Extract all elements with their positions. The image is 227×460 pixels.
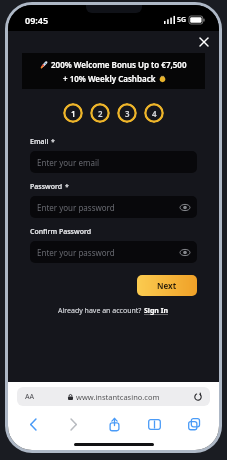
- button[interactable]: Forward: [62, 413, 84, 435]
- button[interactable]: Share: [103, 413, 125, 435]
- staticText: 3: [125, 108, 130, 119]
- staticText: Sign In: [144, 306, 169, 316]
- staticText: 4: [152, 108, 157, 119]
- staticText: 5G: [177, 15, 187, 25]
- staticText: + 10% Weekly Cashback: [63, 73, 156, 84]
- staticText: AA: [25, 392, 35, 402]
- staticText: Enter your password: [37, 247, 115, 258]
- button[interactable]: Enter your password: [30, 241, 197, 263]
- staticText: Confirm Password: [30, 227, 92, 237]
- button[interactable]: 1: [63, 103, 83, 123]
- staticText: Email: [30, 137, 49, 147]
- button[interactable]: Reload: [192, 391, 203, 402]
- staticText: Enter your email: [37, 157, 100, 168]
- button[interactable]: AA: [17, 387, 210, 406]
- button[interactable]: Close: [195, 33, 213, 51]
- staticText: Next: [157, 280, 177, 291]
- staticText: www.instantcasino.com: [76, 392, 160, 402]
- button[interactable]: 2: [90, 103, 110, 123]
- button[interactable]: Show password: [179, 246, 191, 258]
- staticText: Enter your password: [37, 202, 115, 213]
- staticText: *: [51, 137, 55, 147]
- button[interactable]: Bookmarks: [143, 413, 165, 435]
- staticText: Password: [30, 182, 63, 192]
- button[interactable]: 3: [117, 103, 137, 123]
- button[interactable]: Already have an account?: [30, 306, 197, 316]
- button[interactable]: Enter your email: [30, 151, 197, 173]
- staticText: 200% Welcome Bonus Up to €7,500: [51, 59, 187, 70]
- button[interactable]: Enter your password: [30, 196, 197, 218]
- staticText: *: [65, 182, 69, 192]
- staticText: 2: [98, 108, 103, 119]
- button[interactable]: 4: [144, 103, 164, 123]
- button[interactable]: Back: [22, 413, 44, 435]
- staticText: Already have an account?: [58, 306, 144, 316]
- staticText: 09:45: [25, 14, 49, 26]
- staticText: 1: [71, 108, 76, 119]
- button[interactable]: Show password: [179, 201, 191, 213]
- button[interactable]: Next: [137, 275, 197, 296]
- button[interactable]: Tabs: [183, 413, 205, 435]
